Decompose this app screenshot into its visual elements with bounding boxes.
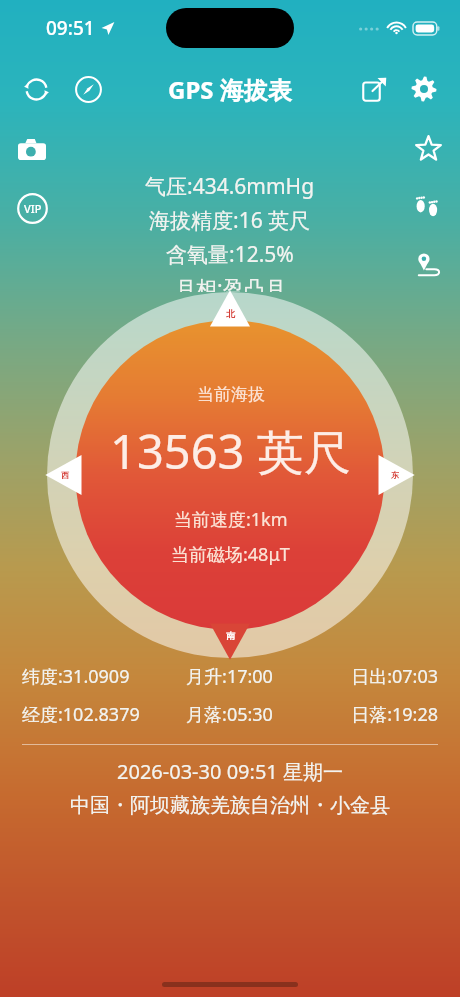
- staticText: 中国・阿坝藏族羌族自治州・小金县: [22, 793, 438, 818]
- staticText: 月升:17:00: [160, 664, 299, 689]
- button[interactable]: Refresh: [14, 67, 58, 111]
- staticText: 当前速度:1km: [174, 507, 288, 532]
- button[interactable]: VIP: [8, 184, 56, 232]
- staticText: 09:51: [46, 15, 95, 41]
- staticText: 2026-03-30 09:51 星期一: [22, 758, 438, 785]
- staticText: 西: [61, 470, 69, 480]
- staticText: 南: [226, 630, 235, 641]
- button[interactable]: Camera: [8, 126, 56, 174]
- staticText: 气压:434.6mmHg: [145, 172, 315, 201]
- button[interactable]: 日落:19:28: [299, 702, 438, 727]
- staticText: 13563 英尺: [110, 419, 351, 483]
- staticText: 北: [226, 308, 235, 319]
- staticText: 日出:07:03: [299, 664, 438, 689]
- button[interactable]: 纬度:31.0909: [22, 664, 160, 689]
- staticText: 海拔精度:16 英尺: [149, 206, 311, 235]
- button[interactable]: Share: [352, 67, 396, 111]
- staticText: VIP: [24, 201, 42, 216]
- staticText: 当前海拔: [197, 384, 265, 405]
- staticText: 当前磁场:48μT: [171, 542, 290, 567]
- button[interactable]: 月升:17:00: [160, 664, 299, 689]
- button[interactable]: 日出:07:03: [299, 664, 438, 689]
- button[interactable]: 当前海拔: [110, 384, 351, 567]
- button[interactable]: Favorite: [404, 124, 452, 172]
- button[interactable]: Compass: [66, 67, 110, 111]
- button[interactable]: Track: [404, 240, 452, 288]
- staticText: 纬度:31.0909: [22, 664, 160, 689]
- staticText: 东: [391, 470, 399, 480]
- button[interactable]: Settings: [402, 67, 446, 111]
- staticText: 月落:05:30: [160, 702, 299, 727]
- staticText: 经度:102.8379: [22, 702, 160, 727]
- button[interactable]: 月落:05:30: [160, 702, 299, 727]
- button[interactable]: 经度:102.8379: [22, 702, 160, 727]
- staticText: 含氧量:12.5%: [166, 240, 294, 269]
- button[interactable]: Steps: [404, 182, 452, 230]
- staticText: 日落:19:28: [299, 702, 438, 727]
- staticText: GPS 海拔表: [168, 73, 292, 106]
- staticText: 月相:盈凸月: [175, 274, 286, 292]
